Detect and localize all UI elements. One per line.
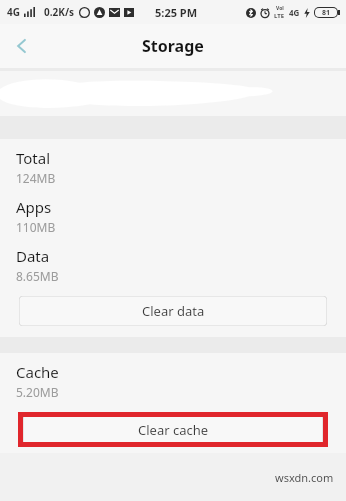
staticText: 5.20MB — [16, 384, 59, 400]
staticText: 110MB — [16, 219, 56, 235]
staticText: 4G — [7, 5, 20, 19]
staticText: Clear data — [142, 302, 205, 320]
staticText: wsxdn.com — [275, 470, 334, 485]
staticText: 81 — [322, 8, 331, 17]
button[interactable]: Clear cache — [23, 415, 323, 445]
staticText: 4G — [289, 7, 300, 18]
staticText: LTE — [274, 12, 285, 20]
staticText: Storage — [142, 35, 204, 57]
staticText: 0.2K/s — [44, 5, 75, 19]
staticText: Apps — [16, 197, 52, 217]
staticText: 8.65MB — [16, 268, 59, 284]
staticText: 5:25 PM — [155, 5, 198, 20]
button[interactable]: Clear data — [19, 296, 327, 326]
staticText: Cache — [16, 362, 59, 382]
button[interactable]: Back — [0, 24, 44, 68]
staticText: Data — [16, 246, 50, 266]
staticText: Vol — [276, 5, 284, 12]
staticText: Total — [16, 148, 51, 168]
staticText: 124MB — [16, 170, 56, 186]
staticText: Clear cache — [138, 421, 209, 439]
